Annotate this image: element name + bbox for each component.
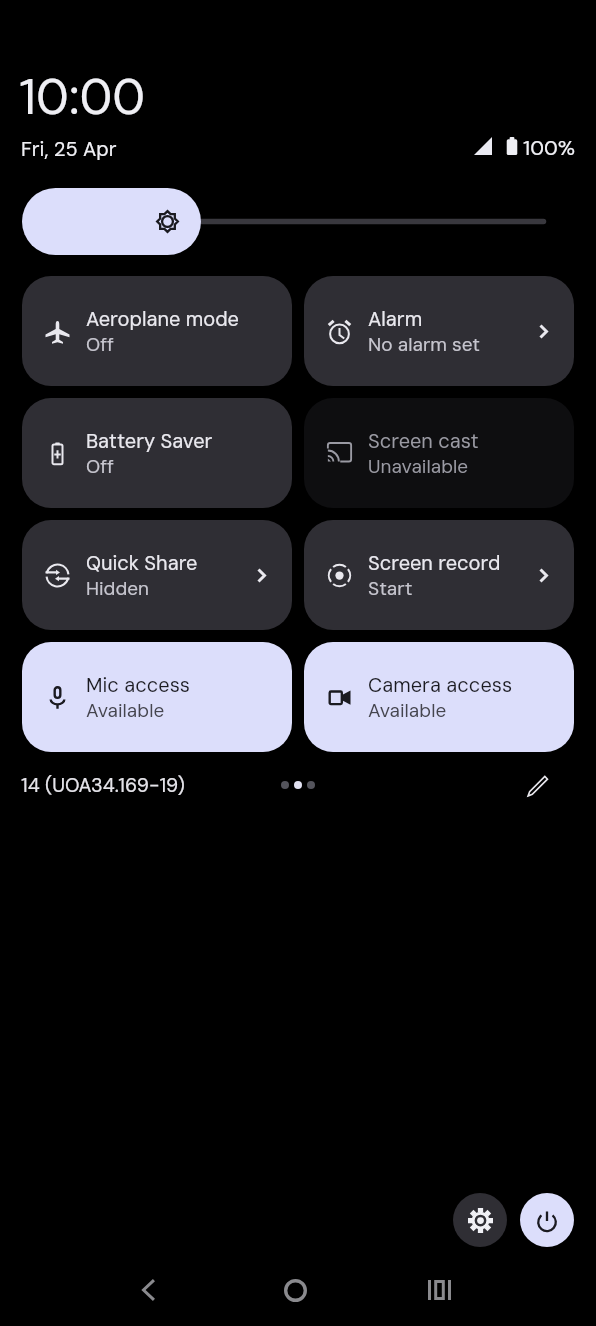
staticText: No alarm set (368, 332, 480, 357)
staticText: 100% (523, 134, 576, 161)
button[interactable]: Screen cast (304, 398, 574, 508)
button[interactable]: Recent apps (415, 1266, 463, 1314)
staticText: Aeroplane mode (86, 306, 239, 332)
button[interactable]: Brightness (22, 188, 574, 255)
staticText: 14 (UOA34.169-19) (21, 773, 185, 798)
button[interactable]: Quick Share (22, 520, 292, 630)
button[interactable]: Back (124, 1266, 172, 1314)
staticText: Available (368, 698, 447, 723)
staticText: Start (368, 576, 413, 601)
button[interactable]: Camera access (304, 642, 574, 752)
staticText: Battery Saver (86, 428, 213, 454)
staticText: Screen cast (368, 428, 479, 454)
staticText: Available (86, 698, 165, 723)
staticText: Quick Share (86, 550, 198, 576)
staticText: Off (86, 454, 114, 479)
staticText: Unavailable (368, 454, 469, 479)
staticText: Screen record (368, 550, 501, 576)
button[interactable]: Power (520, 1193, 574, 1247)
button[interactable]: Edit tiles (526, 774, 549, 797)
button[interactable]: Mic access (22, 642, 292, 752)
button[interactable]: Settings (453, 1193, 507, 1247)
staticText: Fri, 25 Apr (21, 136, 117, 162)
button[interactable]: Alarm (304, 276, 574, 386)
staticText: 10:00 (19, 64, 145, 129)
staticText: Hidden (86, 576, 149, 601)
button[interactable]: Home (271, 1266, 319, 1314)
staticText: Alarm (368, 306, 423, 332)
button[interactable]: Aeroplane mode (22, 276, 292, 386)
staticText: Mic access (86, 672, 191, 698)
button[interactable]: Battery Saver (22, 398, 292, 508)
button[interactable]: Screen record (304, 520, 574, 630)
staticText: Camera access (368, 672, 513, 698)
staticText: Off (86, 332, 114, 357)
